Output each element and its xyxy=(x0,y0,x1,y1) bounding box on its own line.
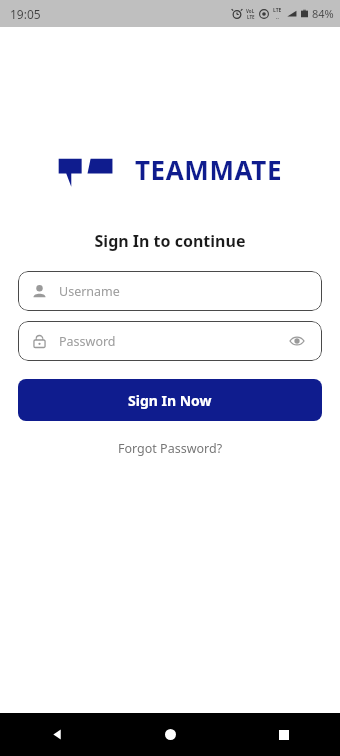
staticText: LTE xyxy=(273,7,282,14)
staticText: Password xyxy=(59,333,286,350)
staticText: Sign In Now xyxy=(128,391,212,410)
staticText: Username xyxy=(59,283,308,300)
button[interactable]: Username xyxy=(18,271,322,311)
button[interactable]: Back xyxy=(0,713,114,756)
staticText: .. xyxy=(276,14,279,21)
button[interactable]: Recent apps xyxy=(227,713,340,756)
staticText: Sign In to continue xyxy=(0,230,340,252)
staticText: TEAMMATE xyxy=(135,152,283,187)
button[interactable]: Sign In Now xyxy=(18,379,322,421)
button[interactable]: Show password xyxy=(286,330,308,352)
button[interactable]: Password xyxy=(18,321,322,361)
staticText: VoL xyxy=(246,8,255,14)
staticText: 84% xyxy=(312,6,334,21)
button[interactable]: Forgot Password? xyxy=(0,436,340,461)
staticText: 19:05 xyxy=(10,6,41,22)
button[interactable]: Home xyxy=(114,713,227,756)
staticText: LTE xyxy=(247,14,255,20)
staticText: Forgot Password? xyxy=(118,440,223,457)
